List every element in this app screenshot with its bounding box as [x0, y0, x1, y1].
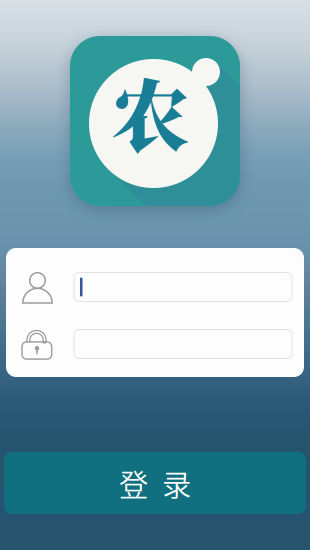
staticText: 登 录: [119, 462, 191, 504]
staticText: 农: [111, 55, 190, 168]
button[interactable]: 登 录: [4, 452, 306, 514]
